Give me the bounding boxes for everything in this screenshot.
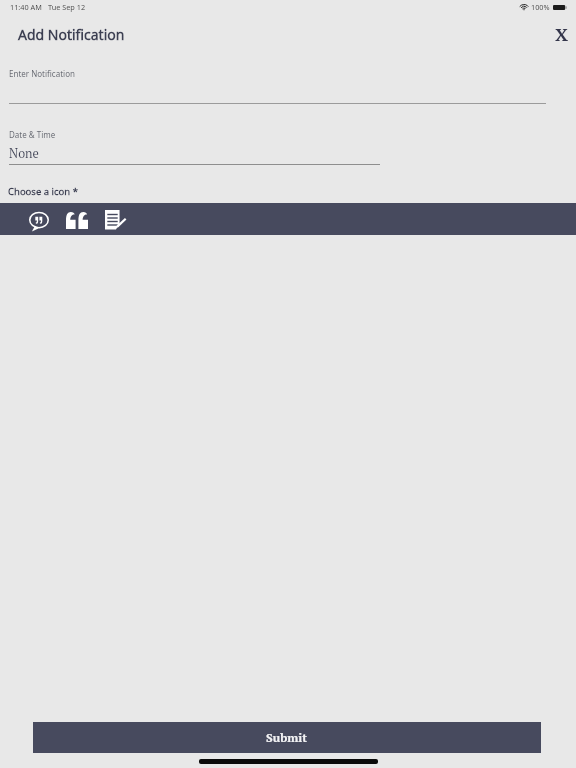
- staticText: Add Notification: [18, 25, 125, 44]
- staticText: Tue Sep 12: [48, 2, 86, 12]
- staticText: Date & Time: [9, 129, 56, 140]
- staticText: Choose a icon *: [8, 185, 78, 198]
- staticText: 100%: [531, 2, 550, 12]
- button[interactable]: Note icon: [100, 206, 128, 232]
- staticText: Submit: [266, 730, 308, 746]
- button[interactable]: Speech bubble quote icon: [24, 206, 52, 232]
- button[interactable]: Quotation mark icon: [62, 206, 92, 232]
- staticText: None: [9, 145, 39, 162]
- staticText: Enter Notification: [9, 68, 75, 79]
- staticText: X: [555, 22, 569, 46]
- button[interactable]: Close: [551, 22, 573, 46]
- staticText: 11:40 AM: [10, 2, 42, 12]
- button[interactable]: Submit: [33, 722, 541, 753]
